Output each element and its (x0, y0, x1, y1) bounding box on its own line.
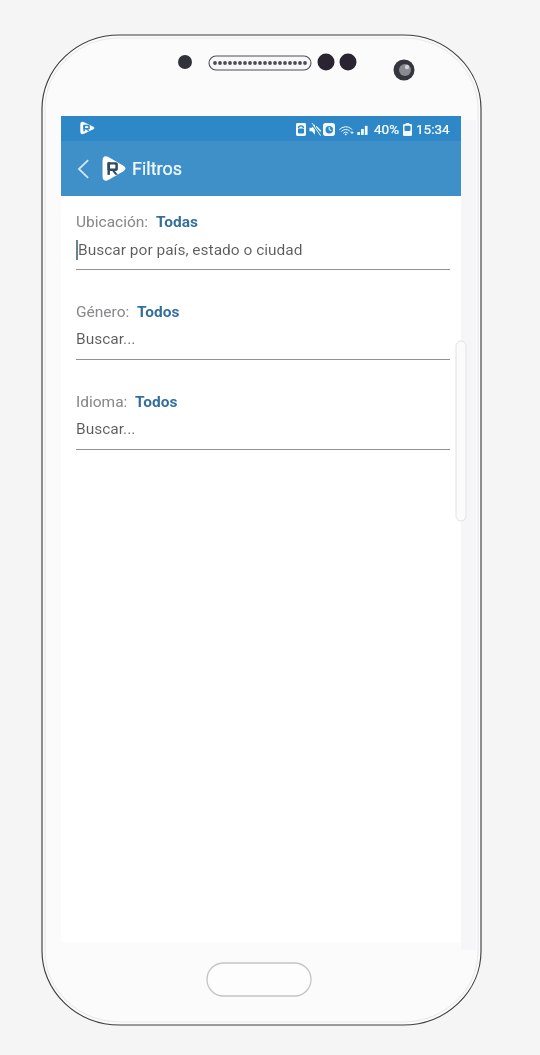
button[interactable]: Buscar por país, estado o ciudad (76, 240, 450, 263)
staticText: Idioma: (76, 393, 128, 411)
staticText: 15:34 (416, 121, 450, 137)
staticText: Filtros (132, 158, 183, 179)
staticText: Buscar por país, estado o ciudad (78, 241, 303, 259)
button[interactable]: Buscar... (76, 420, 450, 443)
staticText: 40% (374, 121, 400, 137)
staticText: Todos (137, 303, 180, 321)
staticText: Todos (135, 393, 178, 411)
staticText: Buscar... (76, 330, 136, 348)
staticText: Buscar... (76, 420, 136, 438)
button[interactable]: Back (67, 151, 99, 187)
staticText: Género: (76, 303, 130, 321)
staticText: Todas (156, 213, 199, 231)
button[interactable]: Buscar... (76, 330, 450, 353)
staticText: Ubicación: (76, 213, 149, 231)
